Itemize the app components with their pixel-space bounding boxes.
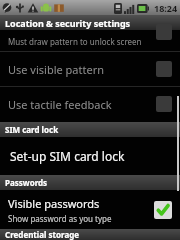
staticText: Show password as you type: [8, 213, 112, 224]
staticText: 18:24: [154, 2, 178, 14]
button[interactable]: Visible passwords: [0, 190, 180, 229]
staticText: Credential storage: [5, 229, 80, 240]
staticText: Use visible pattern: [8, 62, 156, 77]
staticText: Must draw pattern to unlock screen: [8, 36, 142, 47]
other: Must draw pattern to unlock screen check…: [156, 24, 172, 40]
button[interactable]: Use tactile feedback: [0, 87, 180, 121]
button[interactable]: Set-up SIM card lock: [0, 137, 180, 175]
button[interactable]: Must draw pattern to unlock screen: [0, 30, 180, 51]
staticText: Passwords: [5, 177, 48, 188]
staticText: Location & security settings: [5, 17, 131, 29]
button[interactable]: Use visible pattern: [0, 52, 180, 86]
staticText: Use tactile feedback: [8, 97, 156, 112]
staticText: Set-up SIM card lock: [10, 148, 125, 164]
staticText: SIM card lock: [5, 124, 59, 135]
staticText: Visible passwords: [8, 196, 100, 211]
